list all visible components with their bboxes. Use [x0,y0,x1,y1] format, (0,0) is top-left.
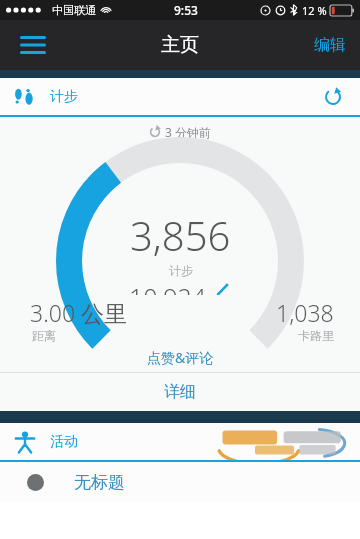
staticText: 主页 [161,33,199,57]
button[interactable]: Menu [12,28,54,62]
staticText: 点赞&评论 [147,348,214,367]
staticText: 12 % [302,3,327,18]
staticText: 中国联通 [52,3,96,17]
button[interactable]: 点赞&评论 [0,343,360,372]
staticText: 计步 [50,88,78,106]
button[interactable]: 无标题 [0,462,360,502]
staticText: 活动 [50,433,78,451]
button[interactable]: 详细 [0,373,360,411]
staticText: 9:53 [174,2,198,18]
staticText: 距离 [32,328,56,343]
button[interactable]: 计步 [0,78,360,115]
staticText: 1,038 [276,297,334,328]
staticText: 计步 [169,263,193,278]
button[interactable]: Refresh [320,84,346,110]
staticText: 3 分钟前 [165,124,211,140]
staticText: 3.00 公里 [30,297,127,328]
button[interactable]: 编辑 [300,25,360,65]
staticText: 卡路里 [298,328,334,343]
staticText: 编辑 [314,35,346,55]
staticText: 无标题 [74,472,125,493]
staticText: 3,856 [130,208,231,262]
staticText: 详细 [164,382,196,402]
button[interactable]: Edit goal [213,280,232,295]
staticText: 10,924 [129,280,207,295]
button[interactable]: 活动 [0,423,360,460]
